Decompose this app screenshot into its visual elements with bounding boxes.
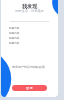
staticText: 标题内容 — [9, 31, 20, 34]
staticText: 我发现 — [1, 3, 58, 9]
staticText: 记录生活，分享美好 — [1, 9, 58, 13]
staticText: 同意用户协议与隐私政策 — [12, 65, 45, 69]
staticText: 标题内容 — [9, 26, 20, 29]
staticText: 登 录 — [26, 86, 33, 90]
button[interactable]: 登 录 — [12, 85, 47, 91]
staticText: 标题内容 — [9, 41, 20, 44]
staticText: 标题内容 — [9, 36, 20, 39]
